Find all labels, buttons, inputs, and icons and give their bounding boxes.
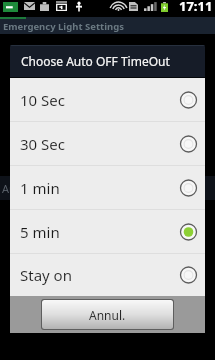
staticText: Choose Auto OFF TimeOut	[21, 53, 170, 69]
button[interactable]: 30 Sec	[10, 122, 205, 165]
staticText: 10 Sec	[20, 90, 65, 110]
staticText: 5 min	[20, 222, 60, 242]
staticText: 17:11	[179, 0, 213, 14]
button[interactable]: Annul.	[42, 300, 173, 329]
staticText: Stay on	[20, 265, 72, 285]
staticText: 30 Sec	[20, 134, 65, 154]
button[interactable]: Stay on	[10, 254, 205, 296]
staticText: Annul.	[89, 307, 126, 323]
button[interactable]: 5 min	[10, 210, 205, 253]
button[interactable]: 1 min	[10, 166, 205, 209]
button[interactable]: 10 Sec	[10, 78, 205, 121]
staticText: Emergency Light Settings	[3, 20, 124, 33]
staticText: Auto OFF TimeOut	[2, 181, 97, 196]
staticText: 1 min	[20, 178, 60, 198]
